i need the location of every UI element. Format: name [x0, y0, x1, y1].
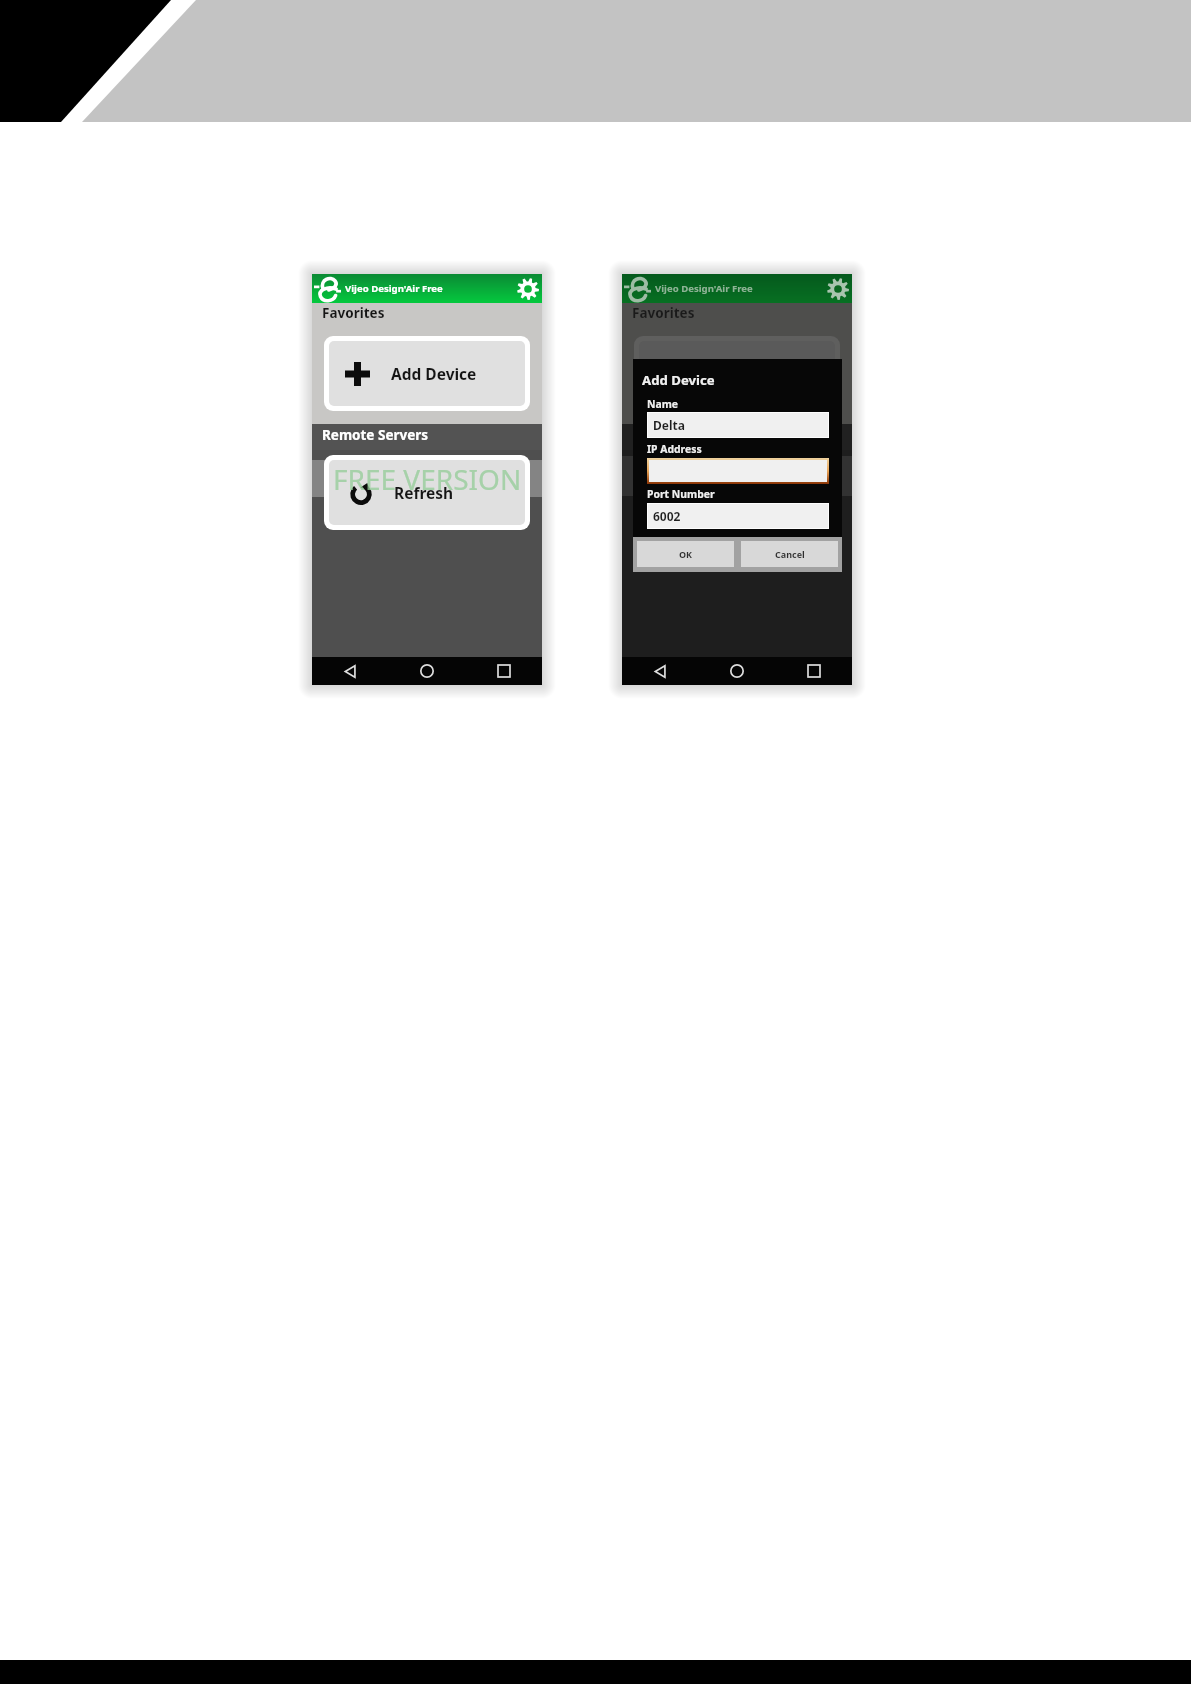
- button[interactable]: OK: [637, 541, 734, 567]
- staticText: Refresh: [394, 482, 454, 503]
- staticText: Cancel: [775, 548, 805, 560]
- button[interactable]: Cancel: [741, 541, 838, 567]
- staticText: Port Number: [647, 487, 715, 501]
- staticText: Vijeo Design'Air Free: [345, 282, 443, 295]
- staticText: Favorites: [632, 304, 695, 322]
- staticText: IP Address: [647, 442, 702, 456]
- button[interactable]: Back: [312, 657, 388, 685]
- button[interactable]: Settings: [823, 274, 852, 303]
- button[interactable]: Settings: [513, 274, 542, 303]
- button[interactable]: Add Device: [329, 341, 525, 406]
- staticText: Name: [647, 397, 679, 411]
- button[interactable]: Refresh: [329, 460, 525, 525]
- staticText: Vijeo Design'Air Free: [655, 282, 753, 295]
- staticText: OK: [679, 548, 693, 560]
- staticText: Remote Servers: [322, 426, 429, 444]
- staticText: Delta: [653, 417, 685, 433]
- staticText: FREE VERSION: [333, 460, 522, 498]
- staticText: 6002: [653, 508, 681, 524]
- button[interactable]: Home: [388, 657, 465, 685]
- button[interactable]: Recents: [465, 657, 542, 685]
- staticText: Add Device: [391, 363, 477, 384]
- button[interactable]: Recents: [775, 657, 852, 685]
- staticText: Add Device: [642, 371, 715, 389]
- button[interactable]: Home: [698, 657, 775, 685]
- button[interactable]: 6002: [648, 504, 828, 528]
- button[interactable]: Delta: [648, 413, 828, 437]
- button[interactable]: Back: [622, 657, 698, 685]
- staticText: Favorites: [322, 304, 385, 322]
